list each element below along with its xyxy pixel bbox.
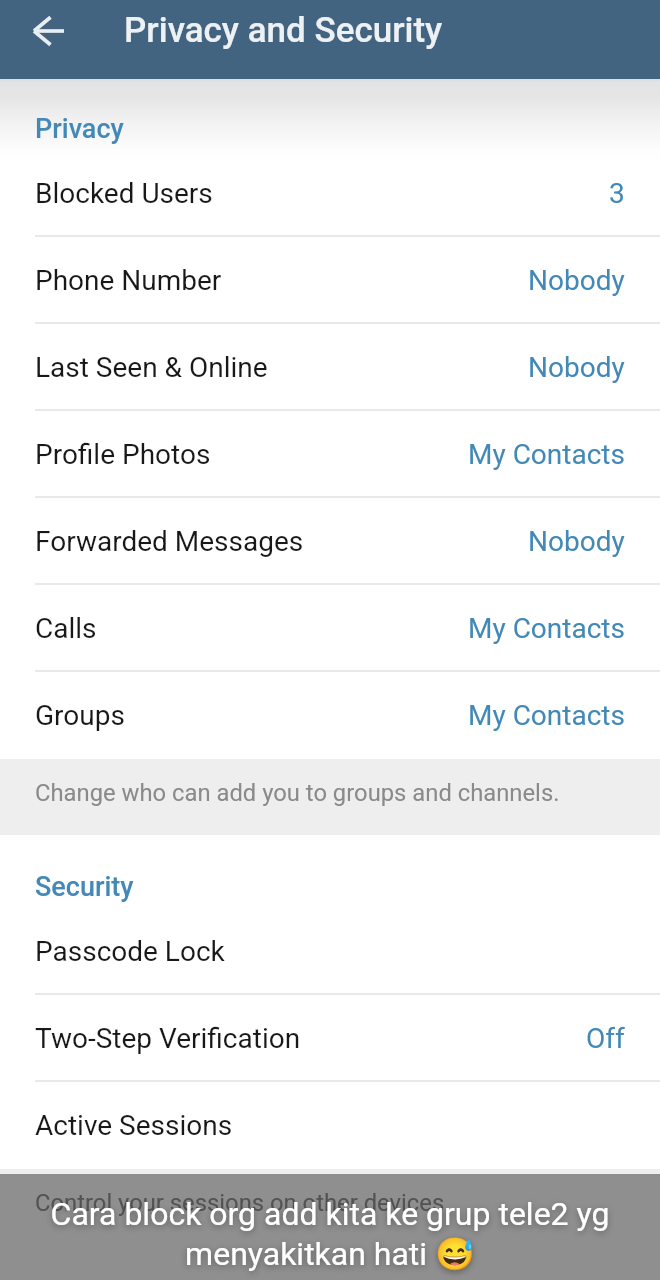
button[interactable]: Two-Step Verification [0,995,660,1082]
button[interactable]: Last Seen & Online [0,324,660,411]
staticText: 3 [609,177,625,210]
staticText: Change who can add you to groups and cha… [35,779,560,807]
staticText: Control your sessions on other devices. [35,1189,451,1217]
staticText: Off [586,1022,625,1055]
staticText: Security [35,871,134,903]
staticText: My Contacts [468,612,625,645]
button[interactable]: Profile Photos [0,411,660,498]
staticText: Nobody [528,264,625,297]
button[interactable]: Forwarded Messages [0,498,660,585]
staticText: Last Seen & Online [35,351,268,384]
staticText: Nobody [528,525,625,558]
button[interactable]: Groups [0,672,660,759]
staticText: My Contacts [468,438,625,471]
staticText: Cara block org add kita ke grup tele2 yg… [24,1195,636,1272]
staticText: Passcode Lock [35,935,225,968]
staticText: Active Sessions [35,1109,233,1142]
button[interactable]: Active Sessions [0,1082,660,1169]
staticText: Forwarded Messages [35,525,304,558]
staticText: Nobody [528,351,625,384]
staticText: Privacy [35,113,124,145]
staticText: Privacy and Security [124,10,443,51]
staticText: Profile Photos [35,438,211,471]
button[interactable]: Blocked Users [0,150,660,237]
button[interactable]: Back [17,0,79,62]
staticText: Groups [35,699,125,732]
staticText: Calls [35,612,97,645]
button[interactable]: Passcode Lock [0,908,660,995]
staticText: My Contacts [468,699,625,732]
button[interactable]: Calls [0,585,660,672]
staticText: Two-Step Verification [35,1022,301,1055]
button[interactable]: Phone Number [0,237,660,324]
staticText: Blocked Users [35,177,213,210]
staticText: Phone Number [35,264,222,297]
